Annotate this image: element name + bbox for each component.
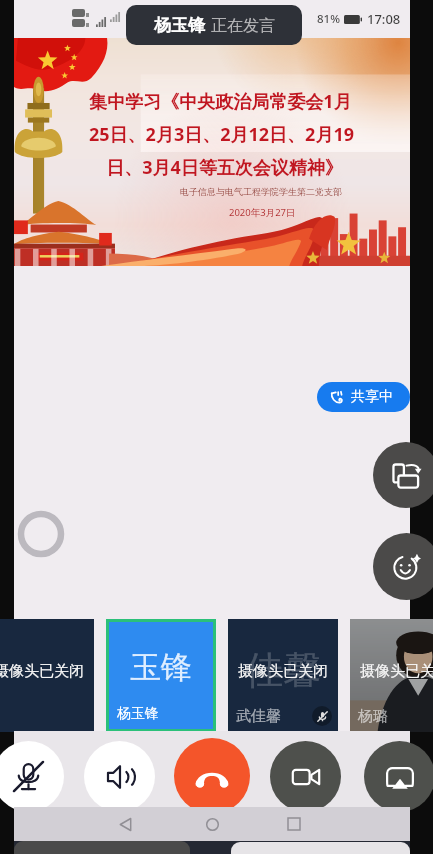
button[interactable]: 玉锋 (109, 622, 213, 729)
button[interactable]: Leave meeting (174, 738, 250, 814)
staticText: 集中学习《中央政治局常委会1月 (89, 89, 352, 114)
button[interactable]: Home (198, 810, 226, 838)
staticText: 81% (317, 11, 340, 27)
staticText: 摄像头已关闭 (0, 662, 84, 681)
staticText: 共享中 (351, 388, 393, 406)
button[interactable]: Unmute (0, 741, 64, 812)
button[interactable]: 共享中 (317, 382, 410, 412)
button[interactable]: 杨玉锋 (126, 5, 302, 45)
staticText: 2020年3月27日 (229, 206, 296, 219)
staticText: 杨璐 (358, 707, 388, 726)
other: Pointer (17, 510, 65, 558)
button[interactable]: 摄像头已关闭 (0, 619, 94, 732)
staticText: 杨玉锋 (117, 705, 159, 723)
staticText: 摄像头已关闭 (238, 662, 328, 681)
staticText: 25日、2月3日、2月12日、2月19 (89, 122, 354, 147)
button[interactable]: Speaker (84, 741, 155, 812)
button[interactable]: 佳馨 (228, 619, 338, 732)
staticText: 17:08 (367, 10, 401, 28)
button[interactable]: 摄像头已关闭 (350, 619, 433, 732)
button[interactable]: Reactions (373, 533, 433, 600)
button[interactable]: Back (111, 810, 139, 838)
button[interactable]: Camera (270, 741, 341, 812)
button[interactable]: Rotate screen (373, 442, 433, 508)
staticText: 佳馨 (245, 646, 321, 694)
staticText: 摄像头已关闭 (360, 662, 433, 681)
button[interactable]: Recents (280, 810, 308, 838)
staticText: 电子信息与电气工程学院学生第二党支部 (180, 186, 342, 197)
staticText: 日、3月4日等五次会议精神》 (106, 155, 343, 180)
staticText: 杨玉锋 (154, 15, 205, 36)
staticText: 正在发言 (211, 16, 275, 36)
staticText: 玉锋 (130, 648, 192, 687)
staticText: 武佳馨 (236, 707, 281, 726)
button[interactable]: Share screen (364, 741, 433, 812)
